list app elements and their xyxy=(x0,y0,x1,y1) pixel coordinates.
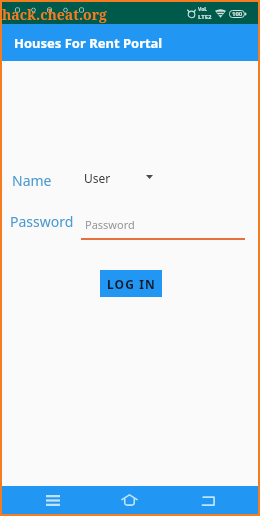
staticText: User xyxy=(84,170,111,186)
staticText: Houses For Rent Portal xyxy=(14,34,163,52)
button[interactable]: Back xyxy=(186,486,230,514)
staticText: Password xyxy=(85,217,135,232)
button[interactable]: LOG IN xyxy=(100,270,162,297)
staticText: Name xyxy=(12,171,52,190)
button[interactable]: Password xyxy=(81,217,246,232)
staticText: 100 xyxy=(232,10,243,18)
staticText: LTE2 xyxy=(198,13,212,21)
button[interactable]: Houses For Rent Portal xyxy=(2,24,258,61)
staticText: LOG IN xyxy=(107,276,156,292)
button[interactable]: Recent apps xyxy=(31,486,75,514)
button[interactable]: Home xyxy=(107,486,151,514)
staticText: VoL xyxy=(198,6,208,13)
staticText: hack.cheat.org xyxy=(2,5,107,24)
staticText: Password xyxy=(10,212,74,231)
button[interactable]: User xyxy=(84,167,154,187)
